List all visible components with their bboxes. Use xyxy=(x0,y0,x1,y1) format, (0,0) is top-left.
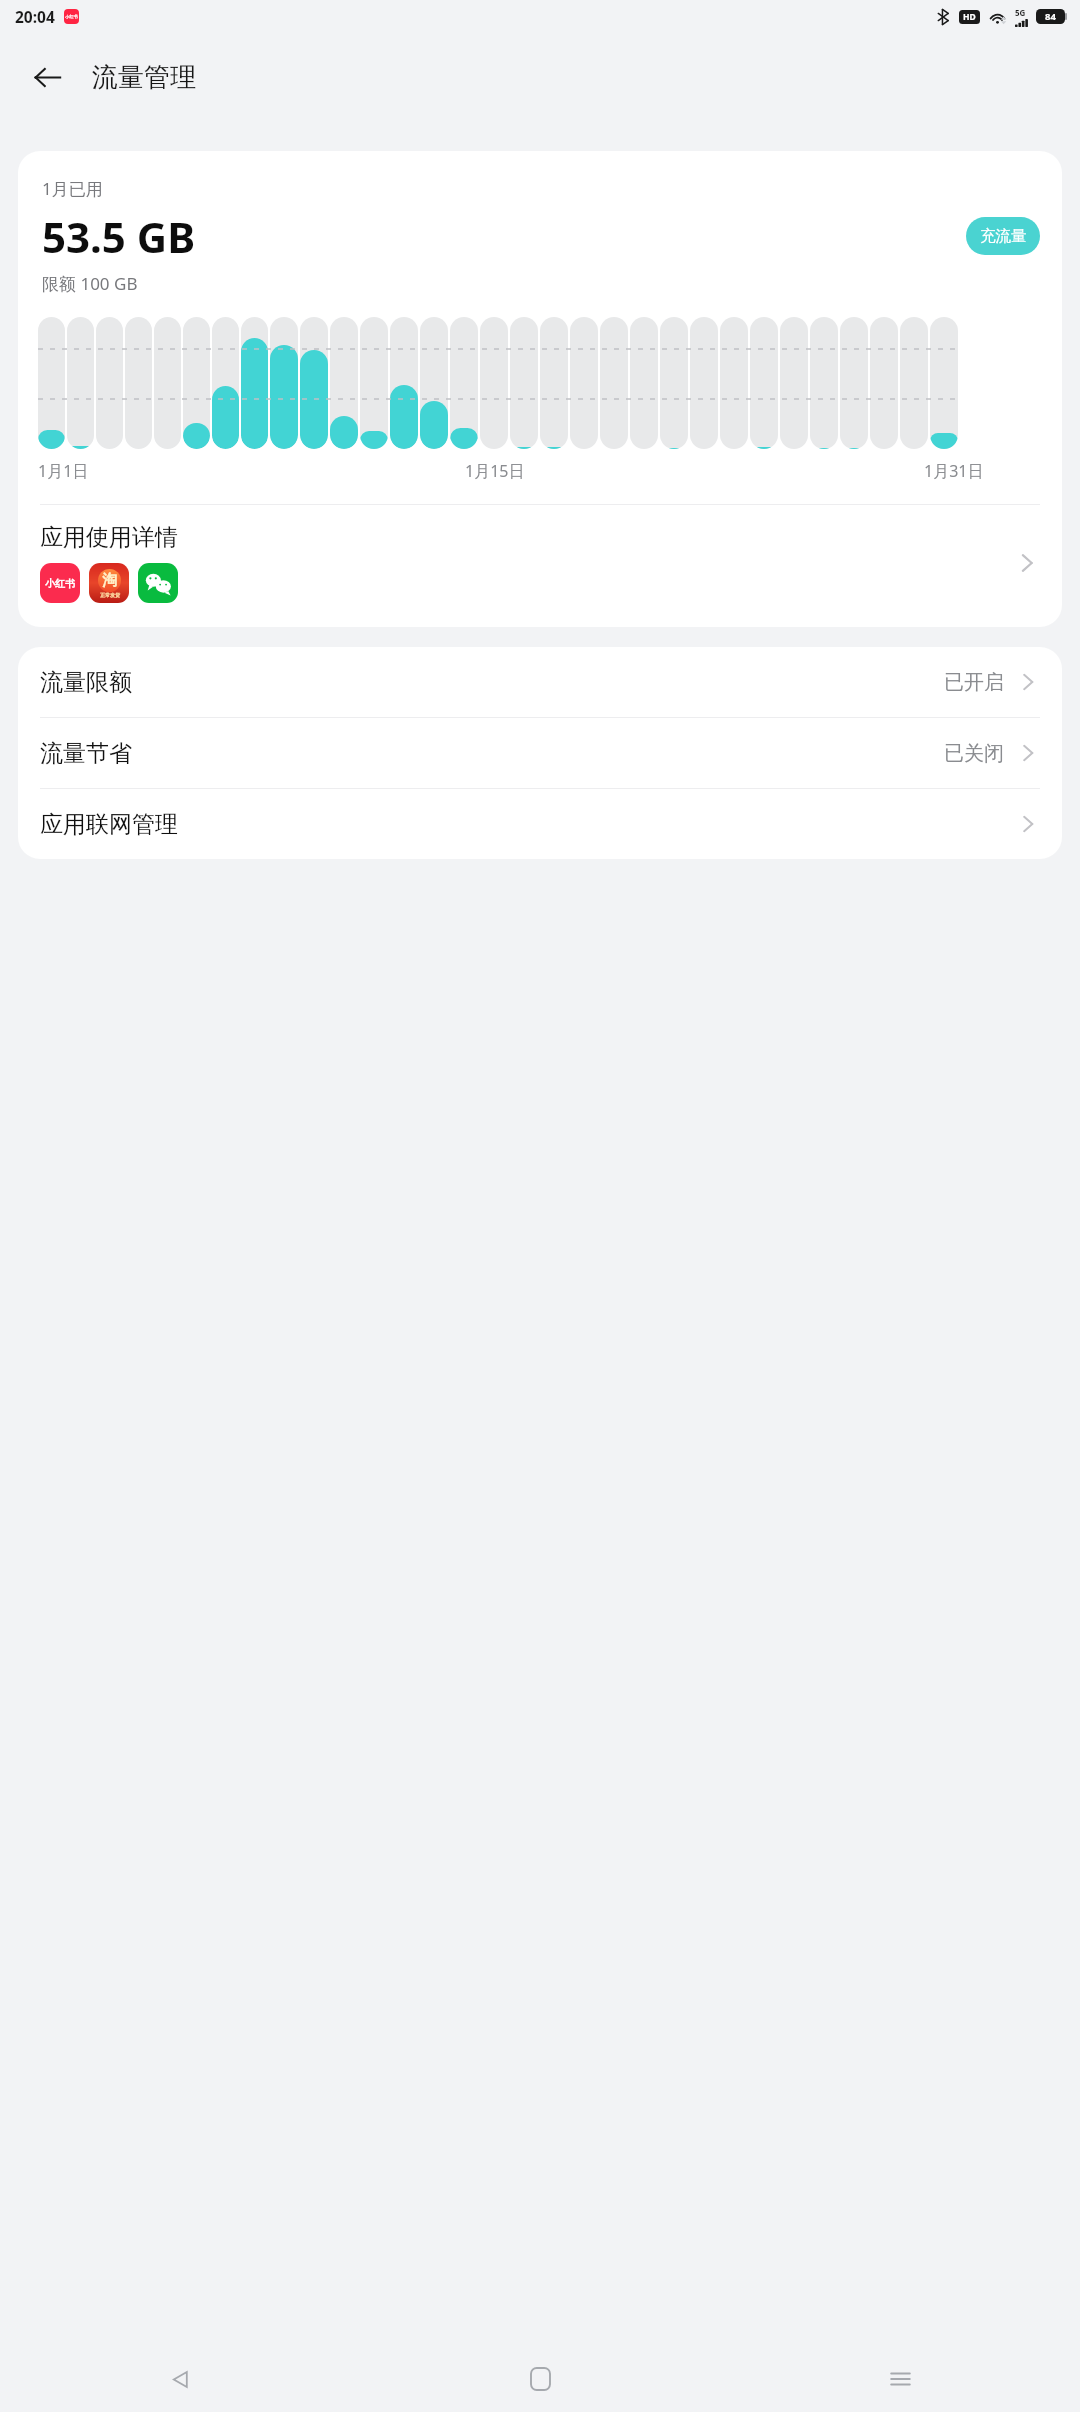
staticText: 1月31日 xyxy=(924,460,984,482)
staticText: 已开启 xyxy=(944,670,1004,695)
staticText: 应用联网管理 xyxy=(40,810,178,839)
button[interactable]: 充流量 xyxy=(966,217,1040,255)
staticText: 53.5 GB xyxy=(42,208,196,265)
staticText: 84 xyxy=(1045,10,1056,23)
staticText: 流量节省 xyxy=(40,739,132,768)
button[interactable]: Back xyxy=(22,52,72,102)
staticText: 流量管理 xyxy=(92,61,196,94)
staticText: 正常发货 xyxy=(100,592,120,598)
staticText: 小红书 xyxy=(65,14,78,19)
staticText: 应用使用详情 xyxy=(40,523,178,552)
button[interactable]: 流量限额 xyxy=(18,647,1062,718)
staticText: 20:04 xyxy=(15,6,55,27)
button[interactable]: Home xyxy=(360,2346,720,2412)
staticText: 限额 100 GB xyxy=(42,272,138,295)
staticText: HD xyxy=(963,11,976,23)
staticText: 已关闭 xyxy=(944,741,1004,766)
button[interactable]: 应用联网管理 xyxy=(18,789,1062,859)
staticText: 流量限额 xyxy=(40,668,132,697)
staticText: 1月15日 xyxy=(465,460,525,482)
button[interactable]: 应用使用详情 xyxy=(18,505,1062,611)
staticText: 小红书 xyxy=(45,577,75,590)
button[interactable]: Menu xyxy=(720,2346,1080,2412)
staticText: 充流量 xyxy=(980,226,1027,246)
button[interactable]: Back xyxy=(0,2346,360,2412)
staticText: 5G xyxy=(1015,7,1026,18)
staticText: 1月1日 xyxy=(38,460,89,482)
staticText: 淘 xyxy=(102,571,117,590)
staticText: 1月已用 xyxy=(42,177,103,200)
button[interactable]: 流量节省 xyxy=(18,718,1062,789)
